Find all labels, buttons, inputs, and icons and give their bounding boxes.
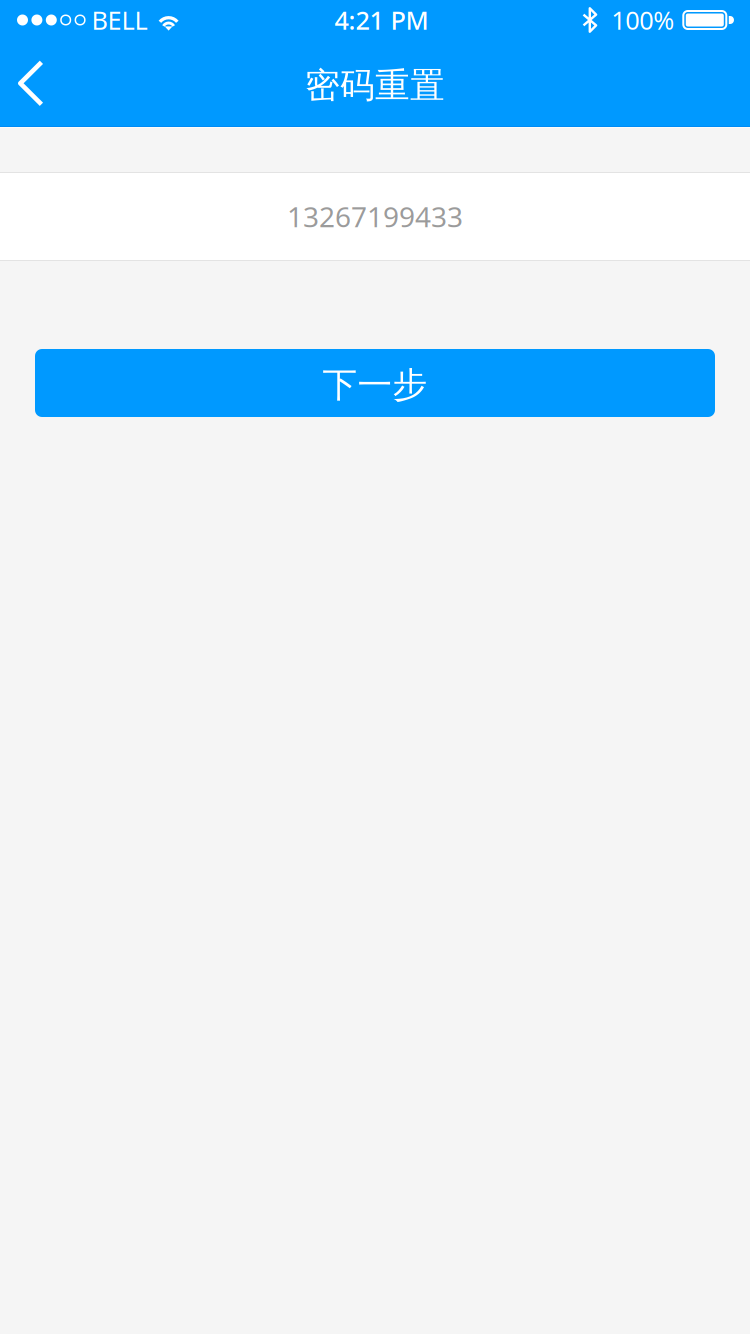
button[interactable]: 13267199433 [0, 172, 750, 261]
staticText: 100% [611, 3, 674, 37]
staticText: 密码重置 [305, 64, 445, 107]
button[interactable]: Back [0, 40, 62, 127]
staticText: 下一步 [322, 364, 427, 406]
staticText: BELL [92, 3, 148, 37]
staticText: 4:21 PM [334, 3, 428, 37]
button[interactable]: 下一步 [35, 349, 715, 417]
staticText: 13267199433 [287, 198, 463, 235]
